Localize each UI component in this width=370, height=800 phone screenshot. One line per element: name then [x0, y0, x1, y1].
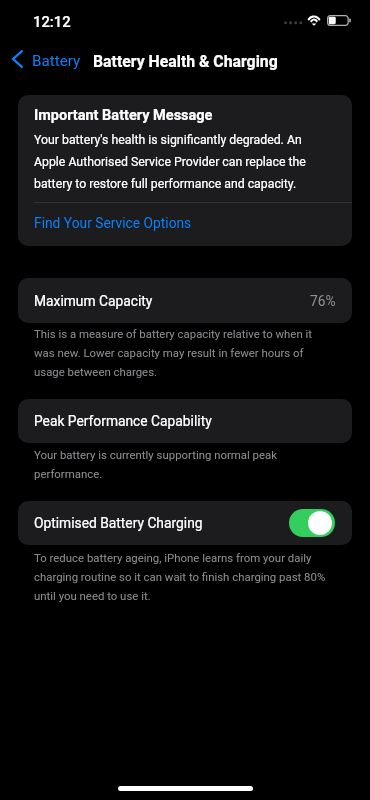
- staticText: Find Your Service Options: [34, 215, 192, 231]
- button[interactable]: Maximum Capacity: [18, 278, 352, 323]
- staticText: This is a measure of battery capacity re…: [34, 323, 330, 380]
- staticText: Your battery's health is significantly d…: [34, 127, 324, 193]
- staticText: Battery Health & Charging: [93, 52, 278, 71]
- staticText: To reduce battery ageing, iPhone learns …: [34, 547, 330, 604]
- button[interactable]: Find Your Service Options: [18, 203, 352, 246]
- staticText: Peak Performance Capability: [34, 413, 212, 429]
- staticText: Battery: [32, 52, 81, 70]
- staticText: Your battery is currently supporting nor…: [34, 444, 330, 482]
- button[interactable]: Peak Performance Capability: [18, 399, 352, 443]
- staticText: 76%: [310, 293, 336, 309]
- staticText: Maximum Capacity: [34, 293, 153, 309]
- staticText: Optimised Battery Charging: [34, 515, 203, 531]
- staticText: Important Battery Message: [34, 107, 213, 124]
- button[interactable]: Battery: [0, 48, 89, 74]
- button[interactable]: Optimised Battery Charging, on: [289, 509, 335, 537]
- staticText: 12:12: [33, 13, 71, 30]
